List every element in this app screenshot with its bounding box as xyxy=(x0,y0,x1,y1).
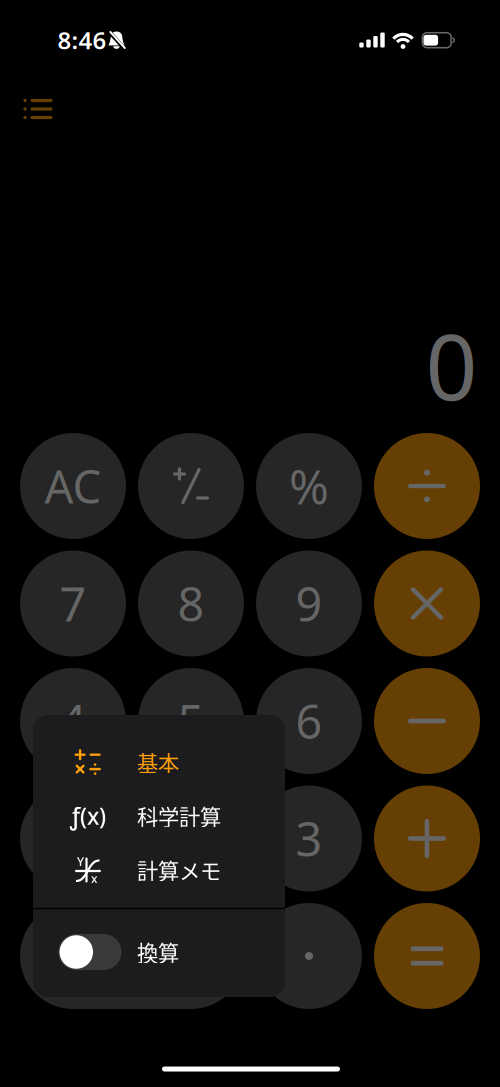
staticText: 基本 xyxy=(137,747,179,777)
staticText: 計算メモ xyxy=(137,855,221,885)
button[interactable]: 1 xyxy=(20,785,126,891)
staticText: 7 xyxy=(59,572,86,634)
staticText: 4 xyxy=(59,690,86,752)
button[interactable]: 換算 xyxy=(33,910,285,994)
button[interactable]: Y xyxy=(33,842,285,897)
button[interactable]: Add xyxy=(374,785,480,891)
button[interactable]: Multiply xyxy=(374,550,480,656)
staticText: Y xyxy=(77,853,84,869)
button[interactable]: 4 xyxy=(20,668,126,774)
staticText: 9 xyxy=(295,572,322,634)
staticText: 6 xyxy=(295,690,322,752)
button[interactable]: 2 xyxy=(138,785,244,891)
staticText: 1 xyxy=(59,807,86,869)
button[interactable]: Subtract xyxy=(374,668,480,774)
button[interactable]: Divide xyxy=(374,433,480,539)
button[interactable]: 6 xyxy=(256,668,362,774)
staticText: 5 xyxy=(177,690,204,752)
staticText: 0 xyxy=(425,305,477,425)
staticText: 2 xyxy=(177,807,204,869)
button[interactable]: 7 xyxy=(20,550,126,656)
button[interactable]: 5 xyxy=(138,668,244,774)
button[interactable]: 9 xyxy=(256,550,362,656)
button[interactable]: Percent xyxy=(256,433,362,539)
staticText: x xyxy=(91,870,98,886)
button[interactable]: 3 xyxy=(256,785,362,891)
button[interactable]: Plus minus xyxy=(138,433,244,539)
staticText: 3 xyxy=(295,807,322,869)
staticText: 0 xyxy=(59,925,86,987)
staticText: AC xyxy=(44,456,101,516)
button[interactable]: Decimal point xyxy=(256,903,362,1009)
staticText: 8:46 xyxy=(57,24,106,56)
button[interactable]: 0 xyxy=(20,903,244,1009)
button[interactable]: 基本 xyxy=(33,734,285,789)
staticText: 換算 xyxy=(137,937,179,967)
staticText: 科学計算 xyxy=(137,801,221,831)
button[interactable]: Calculator modes xyxy=(10,85,66,133)
button[interactable]: All clear xyxy=(20,433,126,539)
staticText: ƒ(x) xyxy=(70,801,106,831)
staticText: % xyxy=(289,454,329,518)
button[interactable]: 8 xyxy=(138,550,244,656)
staticText: 8 xyxy=(177,572,204,634)
button[interactable]: Equals xyxy=(374,903,480,1009)
button[interactable]: ƒ(x) xyxy=(33,788,285,843)
